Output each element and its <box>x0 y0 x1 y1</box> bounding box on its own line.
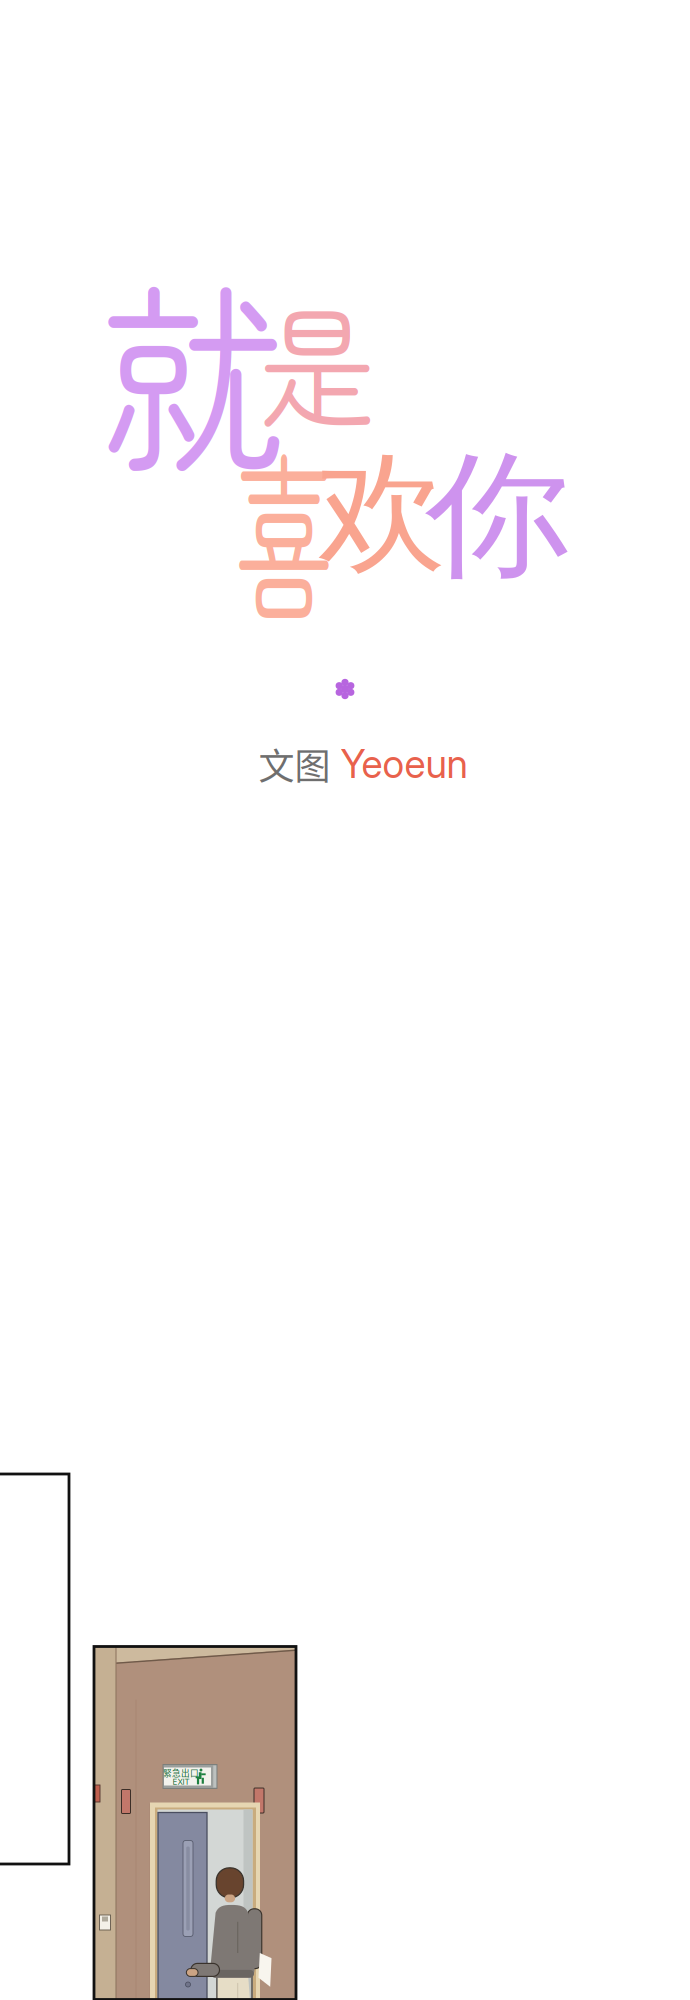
button[interactable]: 就是喜欢你 — episode page, tap to show contro… <box>0 0 690 2000</box>
staticText: 欢 <box>312 425 452 601</box>
staticText: 你 <box>428 428 568 604</box>
staticText: 喜 <box>197 401 370 652</box>
staticText: 緊急出口 <box>163 1766 199 1779</box>
staticText: EXIT <box>172 1777 189 1787</box>
staticText: Yeoeun <box>340 741 467 787</box>
staticText: 文图 <box>258 738 330 790</box>
staticText: 就 <box>95 227 290 509</box>
staticText: 是 <box>250 263 383 457</box>
